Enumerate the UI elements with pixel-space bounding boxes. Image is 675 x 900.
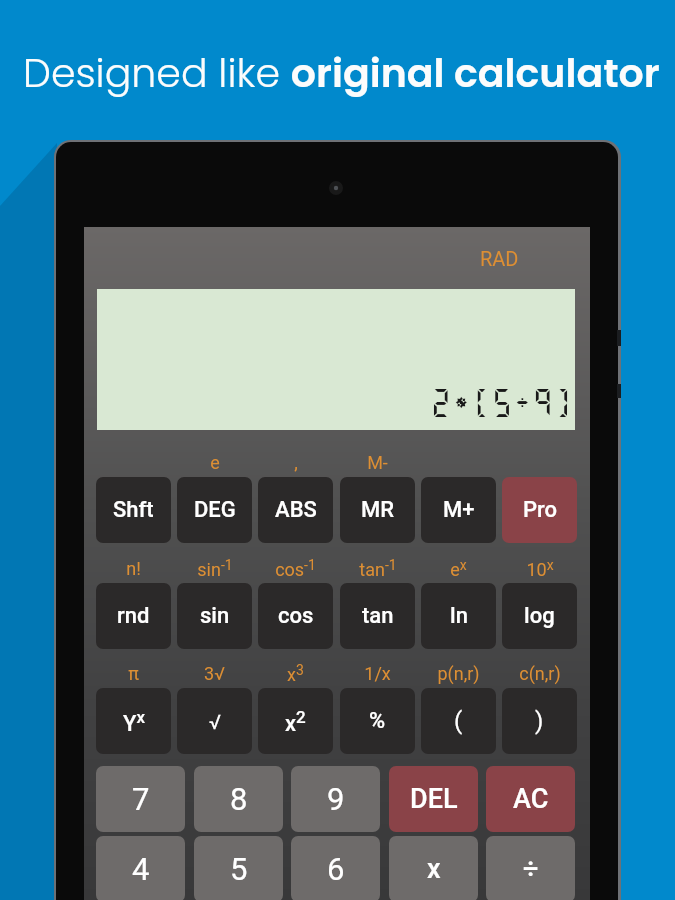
button[interactable]: Yx bbox=[96, 688, 171, 754]
button[interactable]: DEL bbox=[389, 766, 478, 832]
staticText: Pro bbox=[523, 497, 557, 523]
button[interactable]: ABS bbox=[258, 477, 333, 543]
staticText: ex bbox=[450, 557, 467, 581]
button[interactable]: log bbox=[502, 583, 577, 649]
button[interactable]: ( bbox=[421, 688, 496, 754]
staticText: Designed like original calculator bbox=[23, 46, 660, 101]
staticText: π bbox=[128, 663, 139, 684]
staticText: M+ bbox=[443, 497, 475, 523]
button[interactable]: % bbox=[340, 688, 415, 754]
staticText: cos-1 bbox=[275, 557, 316, 581]
button[interactable]: RAD bbox=[459, 241, 539, 275]
staticText: n! bbox=[126, 558, 141, 579]
button[interactable]: tan bbox=[340, 583, 415, 649]
staticText: 4 bbox=[132, 851, 150, 887]
staticText: , bbox=[294, 452, 298, 473]
staticText: DEG bbox=[194, 497, 236, 523]
button[interactable]: ÷ bbox=[486, 836, 575, 900]
staticText: M- bbox=[367, 452, 388, 473]
button[interactable]: MR bbox=[340, 477, 415, 543]
button[interactable]: 6 bbox=[291, 836, 380, 900]
button[interactable]: 5 bbox=[194, 836, 283, 900]
staticText: 5 bbox=[230, 851, 248, 887]
staticText: x2 bbox=[285, 707, 306, 736]
staticText: AC bbox=[513, 783, 549, 815]
button[interactable]: 8 bbox=[194, 766, 283, 832]
button[interactable]: 4 bbox=[96, 836, 185, 900]
staticText: √ bbox=[209, 710, 221, 733]
button[interactable]: √ bbox=[177, 688, 252, 754]
staticText: Yx bbox=[123, 707, 145, 736]
button[interactable]: sin bbox=[177, 583, 252, 649]
button[interactable]: rnd bbox=[96, 583, 171, 649]
staticText: 1/x bbox=[364, 663, 391, 684]
staticText: 10x bbox=[526, 557, 554, 581]
staticText: MR bbox=[361, 497, 394, 523]
button[interactable]: Pro bbox=[502, 477, 577, 543]
staticText: 2*(5÷9) bbox=[430, 385, 573, 420]
button[interactable]: AC bbox=[486, 766, 575, 832]
staticText: ABS bbox=[275, 497, 317, 523]
staticText: 7 bbox=[132, 781, 150, 817]
button[interactable]: x bbox=[389, 836, 478, 900]
staticText: 9 bbox=[327, 781, 345, 817]
button[interactable]: x2 bbox=[258, 688, 333, 754]
staticText: c(n,r) bbox=[519, 663, 561, 684]
button[interactable]: cos bbox=[258, 583, 333, 649]
button[interactable]: 7 bbox=[96, 766, 185, 832]
staticText: Shft bbox=[113, 497, 154, 523]
button[interactable]: DEG bbox=[177, 477, 252, 543]
staticText: tan bbox=[362, 603, 394, 629]
staticText: ) bbox=[535, 707, 544, 735]
staticText: p(n,r) bbox=[437, 663, 480, 684]
staticText: ln bbox=[450, 603, 468, 629]
staticText: 6 bbox=[327, 851, 345, 887]
staticText: % bbox=[369, 708, 386, 734]
button[interactable]: ) bbox=[502, 688, 577, 754]
button[interactable]: ln bbox=[421, 583, 496, 649]
staticText: x3 bbox=[287, 662, 304, 686]
staticText: tan-1 bbox=[359, 557, 397, 581]
button[interactable]: Shft bbox=[96, 477, 171, 543]
button[interactable]: M+ bbox=[421, 477, 496, 543]
staticText: sin bbox=[200, 603, 230, 629]
staticText: cos bbox=[278, 603, 314, 629]
staticText: e bbox=[210, 452, 220, 473]
staticText: sin-1 bbox=[197, 557, 233, 581]
staticText: ÷ bbox=[523, 853, 539, 885]
staticText: x bbox=[427, 853, 441, 885]
staticText: 8 bbox=[230, 781, 248, 817]
staticText: rnd bbox=[117, 603, 150, 629]
staticText: ( bbox=[454, 707, 463, 735]
staticText: DEL bbox=[410, 783, 458, 815]
staticText: log bbox=[524, 603, 555, 629]
staticText: RAD bbox=[480, 247, 519, 270]
staticText: 3√ bbox=[204, 663, 225, 684]
button[interactable]: 9 bbox=[291, 766, 380, 832]
